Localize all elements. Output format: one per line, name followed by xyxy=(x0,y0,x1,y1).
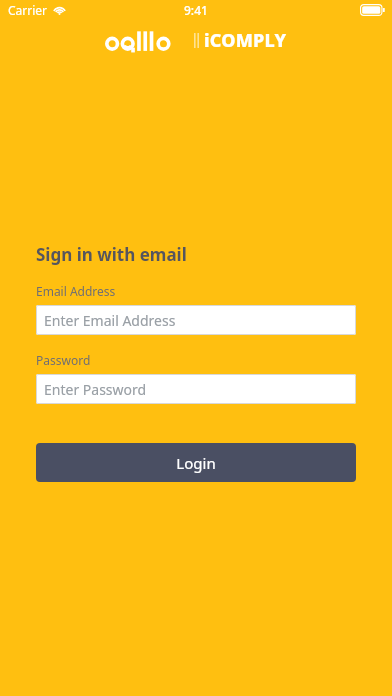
button[interactable]: Enter Password xyxy=(36,374,356,404)
staticText: Carrier xyxy=(8,2,48,18)
staticText: iCOMPLY xyxy=(204,28,287,53)
staticText: Sign in with email xyxy=(36,243,187,266)
staticText: Password xyxy=(36,352,91,368)
staticText: 9:41 xyxy=(184,2,208,18)
button[interactable]: Enter Email Address xyxy=(36,305,356,335)
staticText: Login xyxy=(176,453,216,473)
staticText: Enter Email Address xyxy=(44,311,176,330)
staticText: Email Address xyxy=(36,283,116,299)
staticText: Enter Password xyxy=(44,380,147,399)
other: Agilio iComply logo xyxy=(105,28,287,53)
button[interactable]: Login xyxy=(36,443,356,482)
